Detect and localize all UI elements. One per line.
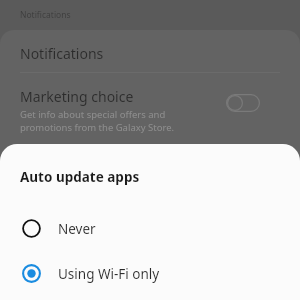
staticText: promotions from the Galaxy Store.	[20, 121, 175, 134]
button[interactable]: Using Wi-Fi only	[0, 251, 300, 296]
button[interactable]: Notifications	[0, 34, 300, 72]
button[interactable]: Marketing choice toggle	[226, 94, 260, 112]
staticText: Auto update apps	[20, 168, 140, 186]
staticText: Notifications	[20, 44, 104, 63]
button[interactable]: Never	[0, 206, 300, 251]
staticText: Get info about special offers and	[20, 108, 166, 121]
staticText: Never	[58, 220, 96, 238]
staticText: Notifications	[20, 9, 71, 21]
staticText: Marketing choice	[20, 87, 134, 106]
button[interactable]: Marketing choice	[0, 78, 300, 140]
staticText: Using Wi-Fi only	[58, 265, 160, 283]
